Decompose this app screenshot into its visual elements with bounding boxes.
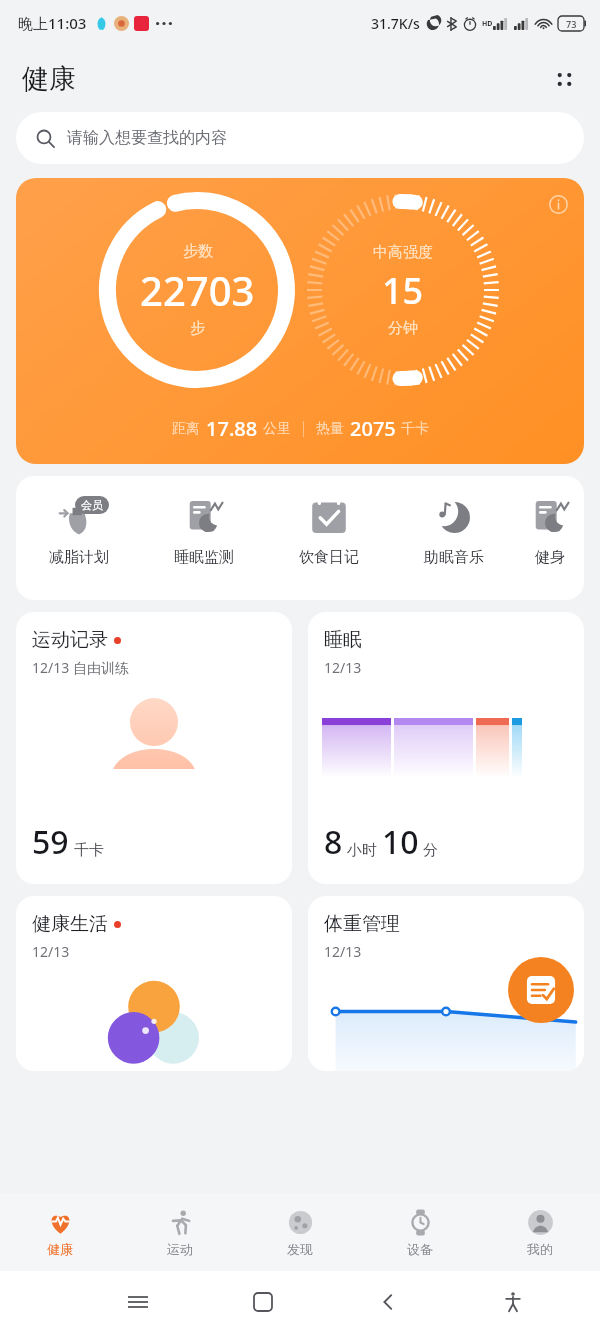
staticText: 步数: [183, 242, 213, 261]
button[interactable]: 请输入想要查找的内容: [16, 112, 584, 164]
staticText: 小时: [347, 841, 377, 860]
staticText: 热量: [316, 420, 344, 438]
staticText: 15: [382, 266, 424, 315]
staticText: 31.7K/s: [371, 14, 420, 33]
staticText: 发现: [287, 1241, 313, 1257]
staticText: HD: [482, 19, 493, 29]
button[interactable]: 助眠音乐: [391, 476, 516, 600]
staticText: 公里: [263, 420, 291, 438]
staticText: 59: [32, 820, 69, 864]
button[interactable]: 睡眠监测: [141, 476, 266, 600]
staticText: 8: [324, 820, 343, 864]
button[interactable]: Accessibility: [450, 1271, 575, 1333]
staticText: 健康生活: [32, 912, 108, 936]
staticText: 17.88: [206, 415, 258, 442]
staticText: 睡眠: [324, 628, 362, 652]
button[interactable]: 发现: [240, 1193, 360, 1271]
staticText: 减脂计划: [49, 548, 109, 567]
staticText: 晚上11:03: [18, 13, 87, 33]
staticText: 健康: [47, 1241, 73, 1257]
button[interactable]: Recents: [75, 1271, 200, 1333]
button[interactable]: 体重管理: [308, 896, 584, 1071]
staticText: 千卡: [74, 841, 104, 860]
staticText: 73: [566, 18, 577, 30]
button[interactable]: 设备: [360, 1193, 480, 1271]
staticText: 体重管理: [324, 912, 400, 936]
button[interactable]: 饮食日记: [266, 476, 391, 600]
staticText: 22703: [140, 263, 255, 317]
button[interactable]: 健康生活: [16, 896, 292, 1071]
staticText: 健身: [535, 548, 565, 567]
staticText: 分钟: [388, 319, 418, 338]
staticText: 12/13: [324, 658, 362, 677]
button[interactable]: 睡眠: [308, 612, 584, 884]
button[interactable]: Information: [540, 186, 576, 222]
button[interactable]: 我的: [480, 1193, 600, 1271]
staticText: 距离: [172, 420, 200, 438]
button[interactable]: 运动: [120, 1193, 240, 1271]
staticText: 2075: [350, 415, 396, 442]
staticText: 助眠音乐: [424, 548, 484, 567]
staticText: 运动记录: [32, 628, 108, 652]
button[interactable]: 会员: [16, 476, 141, 600]
staticText: 睡眠监测: [174, 548, 234, 567]
staticText: 步: [190, 319, 205, 338]
button[interactable]: 健身: [516, 476, 584, 600]
staticText: 12/13 自由训练: [32, 658, 129, 677]
staticText: 运动: [167, 1241, 193, 1257]
staticText: 健康: [22, 62, 76, 96]
button[interactable]: Record weight: [508, 957, 574, 1023]
staticText: 分: [423, 841, 438, 860]
button[interactable]: Home: [200, 1271, 325, 1333]
button[interactable]: 运动记录: [16, 612, 292, 884]
button[interactable]: 健康: [0, 1193, 120, 1271]
staticText: 饮食日记: [299, 548, 359, 567]
staticText: 12/13: [324, 942, 362, 961]
staticText: 请输入想要查找的内容: [67, 128, 227, 148]
button[interactable]: Information: [16, 178, 584, 464]
button[interactable]: Back: [325, 1271, 450, 1333]
staticText: 千卡: [401, 420, 429, 438]
staticText: 10: [382, 820, 419, 864]
staticText: 会员: [81, 498, 103, 512]
staticText: 我的: [527, 1241, 553, 1257]
staticText: 12/13: [32, 942, 70, 961]
staticText: 设备: [407, 1241, 433, 1257]
button[interactable]: More options: [540, 55, 588, 103]
staticText: 中高强度: [373, 243, 433, 262]
